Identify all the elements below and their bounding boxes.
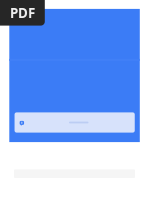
staticText: PDF xyxy=(10,4,35,22)
button[interactable]: Document annotation xyxy=(15,112,135,133)
button[interactable]: PDF document xyxy=(0,0,45,26)
